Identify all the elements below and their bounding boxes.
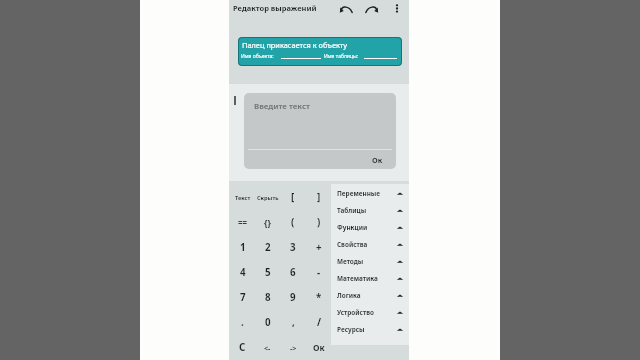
staticText: Логика xyxy=(337,291,361,300)
staticText: 4 xyxy=(240,266,246,279)
staticText: , xyxy=(292,316,295,329)
button[interactable]: More options xyxy=(389,0,405,16)
button[interactable]: Ок xyxy=(368,153,386,167)
staticText: ] xyxy=(317,191,321,204)
button[interactable]: / xyxy=(306,310,332,335)
staticText: Скрыть xyxy=(257,194,279,202)
button[interactable]: Ок xyxy=(306,335,332,360)
staticText: Устройство xyxy=(337,308,374,317)
staticText: Введите текст xyxy=(254,101,311,112)
button[interactable]: Свойства xyxy=(331,236,409,253)
staticText: 6 xyxy=(290,266,296,279)
button[interactable]: ) xyxy=(306,210,332,235)
staticText: -> xyxy=(290,343,297,353)
staticText: 0 xyxy=(265,316,271,329)
button[interactable]: ] xyxy=(306,185,332,210)
staticText: / xyxy=(317,316,322,329)
button[interactable]: 9 xyxy=(280,285,306,310)
staticText: Методы xyxy=(337,257,364,266)
button[interactable]: С xyxy=(230,335,255,360)
staticText: Текст xyxy=(235,194,251,202)
button[interactable]: 7 xyxy=(230,285,255,310)
button[interactable]: 4 xyxy=(230,260,255,285)
button[interactable]: , xyxy=(280,310,306,335)
button[interactable]: 1 xyxy=(230,235,255,260)
button[interactable]: + xyxy=(306,235,332,260)
staticText: Палец прикасается к объекту xyxy=(242,40,348,50)
staticText: Имя объекта: xyxy=(241,53,274,60)
staticText: 8 xyxy=(265,291,271,304)
button[interactable]: Функции xyxy=(331,219,409,236)
button[interactable]: 6 xyxy=(280,260,306,285)
button[interactable]: <- xyxy=(255,335,280,360)
staticText: == xyxy=(238,217,248,228)
staticText: <- xyxy=(264,343,271,353)
button[interactable]: Переменные xyxy=(331,185,409,202)
button[interactable]: [ xyxy=(280,185,306,210)
staticText: 5 xyxy=(265,266,271,279)
staticText: ( xyxy=(291,216,295,229)
button[interactable]: 8 xyxy=(255,285,280,310)
staticText: Ресурсы xyxy=(337,325,365,334)
button[interactable]: == xyxy=(230,210,255,235)
button[interactable]: Текст xyxy=(230,185,255,210)
button[interactable]: Скрыть xyxy=(255,185,280,210)
staticText: Имя таблицы: xyxy=(324,53,359,60)
staticText: Ок xyxy=(372,155,383,165)
staticText: 1 xyxy=(240,241,246,254)
staticText: . xyxy=(241,316,244,329)
button[interactable]: Undo xyxy=(337,0,355,17)
button[interactable]: 3 xyxy=(280,235,306,260)
staticText: Таблицы xyxy=(337,206,367,215)
staticText: [ xyxy=(291,191,295,204)
button[interactable]: 0 xyxy=(255,310,280,335)
button[interactable]: {} xyxy=(255,210,280,235)
staticText: Математика xyxy=(337,274,378,283)
button[interactable]: Устройство xyxy=(331,304,409,321)
button[interactable]: 5 xyxy=(255,260,280,285)
button[interactable]: Математика xyxy=(331,270,409,287)
button[interactable]: 2 xyxy=(255,235,280,260)
staticText: 7 xyxy=(240,291,246,304)
staticText: 2 xyxy=(265,241,271,254)
staticText: Редактор выражений xyxy=(233,3,317,13)
staticText: Переменные xyxy=(337,189,381,198)
button[interactable]: Методы xyxy=(331,253,409,270)
button[interactable]: - xyxy=(306,260,332,285)
staticText: Свойства xyxy=(337,240,368,249)
staticText: 3 xyxy=(290,241,296,254)
staticText: {} xyxy=(264,217,271,229)
button[interactable]: . xyxy=(230,310,255,335)
button[interactable]: Ресурсы xyxy=(331,321,409,338)
staticText: - xyxy=(317,266,321,279)
button[interactable]: Логика xyxy=(331,287,409,304)
staticText: Функции xyxy=(337,223,368,232)
button[interactable]: Redo xyxy=(363,0,381,17)
staticText: Ок xyxy=(313,342,325,353)
staticText: + xyxy=(316,241,322,254)
button[interactable]: -> xyxy=(280,335,306,360)
staticText: С xyxy=(239,341,246,354)
button[interactable]: * xyxy=(306,285,332,310)
staticText: ) xyxy=(317,216,321,229)
button[interactable]: Палец прикасается к объекту xyxy=(238,37,402,66)
button[interactable]: Таблицы xyxy=(331,202,409,219)
staticText: 9 xyxy=(290,291,296,304)
button[interactable]: ( xyxy=(280,210,306,235)
staticText: * xyxy=(316,291,322,304)
